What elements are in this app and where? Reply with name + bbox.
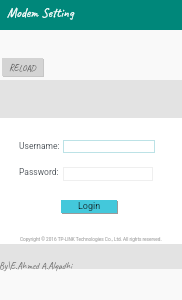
staticText: Modem Setting [7, 5, 74, 21]
button[interactable]: RELOAD [2, 58, 43, 76]
staticText: By\E.Ahmed A.Alqadhi [0, 260, 73, 272]
staticText: RELOAD [9, 62, 36, 73]
staticText: Login [78, 201, 101, 212]
staticText: Username: [19, 141, 60, 151]
staticText: Password: [19, 167, 59, 177]
button[interactable]: Login [61, 200, 117, 213]
staticText: Copyright © 2016 TP-LINK Technologies Co… [20, 237, 162, 243]
button[interactable] [63, 167, 153, 181]
button[interactable] [63, 140, 155, 153]
